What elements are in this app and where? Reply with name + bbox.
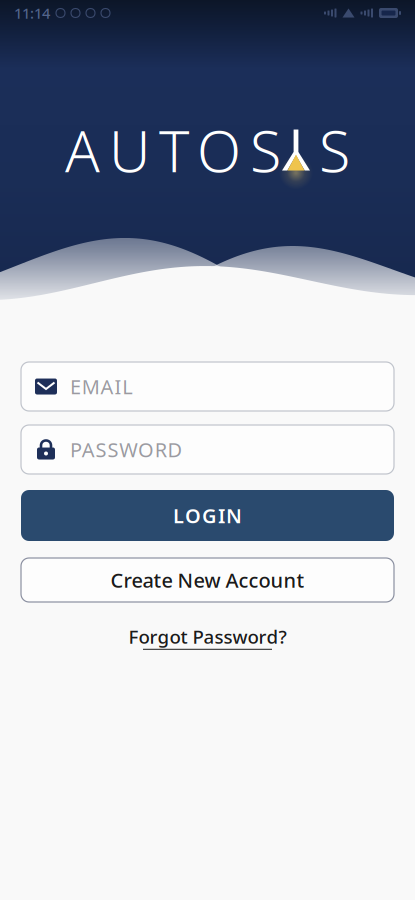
staticText: Create New Account <box>110 567 304 593</box>
button[interactable]: Forgot Password? <box>104 622 310 652</box>
staticText: 11:14 <box>14 3 50 23</box>
staticText: EMAIL <box>70 373 132 400</box>
staticText: LOGIN <box>173 502 242 529</box>
button[interactable]: EMAIL <box>21 362 394 411</box>
staticText: Forgot Password? <box>128 624 286 649</box>
button[interactable]: Create New Account <box>21 558 394 602</box>
button[interactable]: PASSWORD <box>21 425 394 474</box>
staticText: S <box>319 112 350 188</box>
staticText: PASSWORD <box>70 436 183 463</box>
button[interactable]: LOGIN <box>21 490 394 541</box>
staticText: AUTOS <box>65 112 281 188</box>
